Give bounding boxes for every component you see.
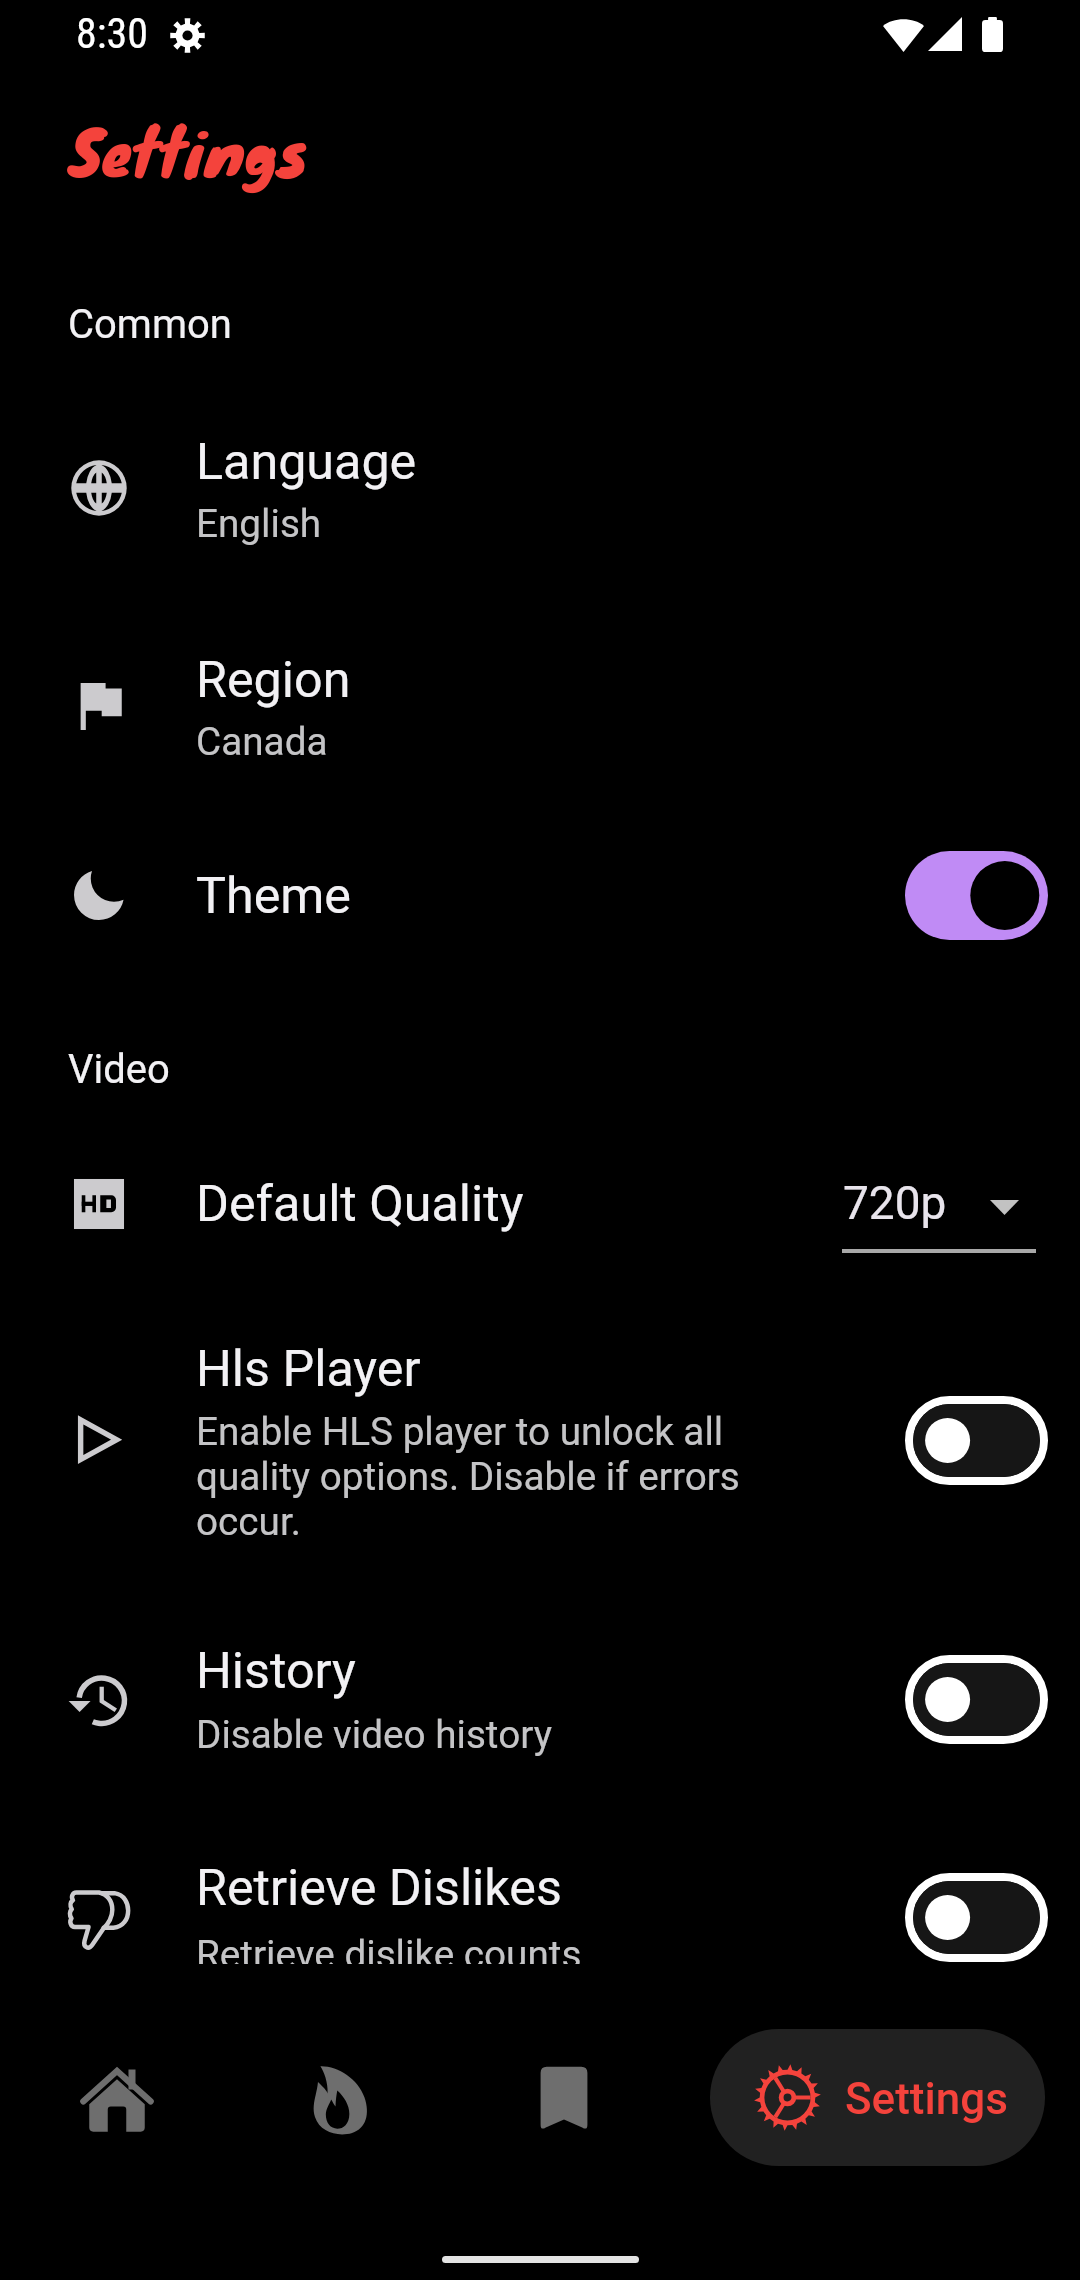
staticText: Hls Player: [196, 1339, 421, 1398]
staticText: Region: [196, 650, 351, 709]
staticText: Settings: [69, 103, 309, 198]
staticText: Language: [196, 432, 417, 491]
staticText: 720p: [843, 1176, 947, 1230]
staticText: Canada: [196, 719, 328, 764]
button[interactable]: History: [0, 1610, 1080, 1790]
staticText: Retrieve dislike counts: [196, 1932, 582, 1964]
staticText: Default Quality: [196, 1174, 524, 1233]
button[interactable]: Default Quality: [0, 1130, 1080, 1280]
button[interactable]: Switch, off: [905, 1396, 1048, 1485]
button[interactable]: Trending: [268, 2026, 412, 2170]
staticText: Theme: [196, 866, 352, 925]
staticText: Settings: [845, 2073, 1008, 2125]
staticText: English: [196, 501, 322, 546]
staticText: History: [196, 1641, 356, 1700]
button[interactable]: Library: [492, 2026, 636, 2170]
staticText: Video: [68, 1046, 170, 1093]
staticText: Retrieve Dislikes: [196, 1858, 562, 1917]
button[interactable]: Switch, off: [905, 1873, 1048, 1962]
button[interactable]: Theme: [0, 830, 1080, 960]
button[interactable]: Settings: [710, 2029, 1045, 2166]
button[interactable]: Hls Player: [0, 1310, 1080, 1570]
button[interactable]: Language: [0, 400, 1080, 580]
button[interactable]: Default quality 720p: [843, 1176, 1044, 1254]
staticText: Common: [68, 301, 232, 348]
staticText: Disable video history: [196, 1712, 552, 1757]
button[interactable]: Theme switch, on: [905, 851, 1048, 940]
button[interactable]: Switch, off: [905, 1655, 1048, 1744]
button[interactable]: Home: [45, 2026, 189, 2170]
staticText: 8:30: [76, 9, 149, 58]
staticText: Enable HLS player to unlock all quality …: [196, 1409, 748, 1544]
button[interactable]: Region: [0, 615, 1080, 795]
button[interactable]: Retrieve Dislikes: [0, 1830, 1080, 1964]
